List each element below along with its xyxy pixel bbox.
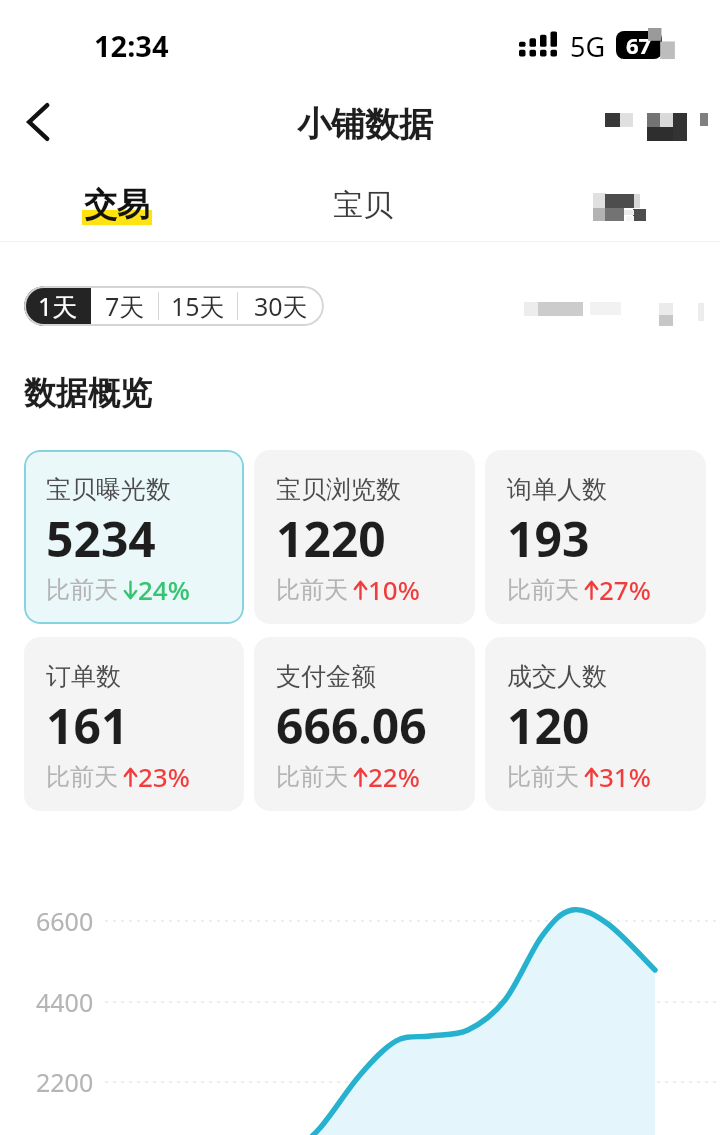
staticText: 67 (626, 31, 652, 58)
staticText: 120 (507, 693, 590, 758)
button[interactable]: 支付金额 (254, 637, 475, 811)
staticText: 10% (368, 572, 420, 607)
staticText: 小铺数据 (297, 103, 433, 146)
staticText: 7天 (105, 289, 145, 323)
staticText: 23% (138, 759, 190, 794)
staticText: 询单人数 (507, 474, 607, 505)
staticText: 成交人数 (507, 661, 607, 692)
staticText: 交易 (84, 184, 150, 226)
staticText: 宝贝浏览数 (276, 474, 401, 505)
staticText: 6600 (36, 904, 94, 938)
staticText: 支付金额 (276, 661, 376, 692)
staticText: 数据概览 (24, 373, 152, 413)
button[interactable]: 订单数 (24, 637, 244, 811)
staticText: 12:34 (94, 26, 169, 65)
staticText: 订单数 (46, 661, 121, 692)
staticText: 比前天 (507, 762, 579, 792)
staticText: 22% (368, 759, 420, 794)
staticText: 27% (599, 572, 651, 607)
button[interactable]: 成交人数 (485, 637, 706, 811)
button[interactable]: Back (8, 88, 68, 164)
staticText: 31% (599, 759, 651, 794)
button[interactable]: 15天 (158, 286, 237, 326)
staticText: 比前天 (507, 575, 579, 605)
staticText: 1天 (38, 289, 78, 323)
staticText: 30天 (254, 289, 308, 323)
staticText: 2200 (36, 1065, 94, 1099)
staticText: 5G (570, 28, 606, 65)
staticText: 15天 (171, 289, 225, 323)
staticText: 比前天 (46, 762, 118, 792)
staticText: 193 (507, 506, 590, 571)
button[interactable]: 宝贝曝光数 (24, 450, 244, 624)
button[interactable]: Filter (590, 188, 652, 222)
button[interactable]: 30天 (237, 286, 324, 326)
staticText: 24% (138, 572, 190, 607)
staticText: 比前天 (46, 575, 118, 605)
button[interactable]: 询单人数 (485, 450, 706, 624)
staticText: 161 (46, 693, 129, 758)
button[interactable]: 宝贝浏览数 (254, 450, 475, 624)
staticText: 宝贝 (333, 186, 393, 224)
staticText: 比前天 (276, 575, 348, 605)
button[interactable]: 宝贝 (318, 164, 408, 242)
button[interactable]: 7天 (91, 286, 158, 326)
button[interactable]: Options (515, 297, 715, 337)
button[interactable]: More (600, 96, 710, 140)
button[interactable]: 交易 (70, 164, 164, 242)
staticText: 宝贝曝光数 (46, 474, 171, 505)
staticText: 5234 (46, 506, 156, 571)
staticText: 比前天 (276, 762, 348, 792)
button[interactable]: 1天 (24, 286, 91, 326)
staticText: 666.06 (276, 693, 427, 758)
staticText: 4400 (36, 985, 94, 1019)
staticText: 1220 (276, 506, 386, 571)
